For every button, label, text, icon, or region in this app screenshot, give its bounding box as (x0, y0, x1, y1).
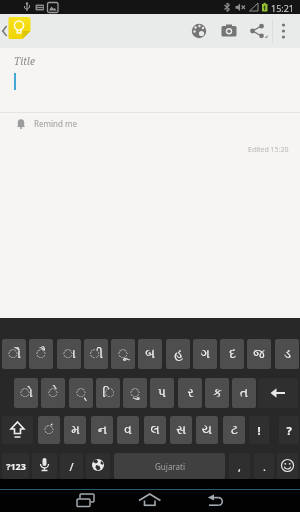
staticText: હ (174, 348, 183, 360)
staticText: ટ (231, 424, 238, 436)
button[interactable]: ટ (223, 416, 245, 444)
button[interactable]: . (254, 453, 274, 479)
button[interactable]: ૌ (2, 339, 26, 369)
button[interactable]: ? (279, 416, 299, 444)
button[interactable]: હ (166, 339, 190, 369)
button[interactable]: ્ (69, 378, 93, 408)
button[interactable]: મ (64, 416, 86, 444)
button[interactable]: િ (96, 378, 120, 408)
button[interactable] (243, 17, 271, 45)
button[interactable] (277, 453, 298, 479)
button[interactable]: જ (247, 339, 271, 369)
staticText: / (69, 459, 74, 474)
button[interactable] (258, 378, 298, 408)
staticText: વ (124, 424, 132, 436)
staticText: Remind me (34, 118, 77, 129)
button[interactable] (185, 17, 213, 45)
button[interactable]: ડ (275, 339, 299, 369)
button[interactable]: Title (8, 52, 292, 70)
button[interactable]: ૈ (29, 339, 53, 369)
staticText: દ (229, 348, 236, 360)
staticText: ૈ (36, 348, 46, 360)
staticText: ા (63, 348, 76, 360)
staticText: બ (145, 348, 155, 360)
button[interactable]: ?123 (2, 453, 29, 479)
staticText: લ (150, 424, 160, 436)
button[interactable] (86, 453, 110, 479)
button[interactable] (215, 17, 243, 45)
button[interactable] (270, 17, 298, 45)
button[interactable]: ર (178, 378, 202, 408)
button[interactable] (204, 490, 232, 512)
staticText: ?123 (6, 460, 26, 472)
staticText: ડ (284, 348, 291, 360)
staticText: જ (253, 348, 265, 360)
button[interactable]: બ (138, 339, 162, 369)
staticText: પ (158, 387, 166, 399)
button[interactable]: ગ (193, 339, 217, 369)
button[interactable]: Remind me (0, 113, 300, 136)
staticText: ે (48, 387, 58, 399)
button[interactable] (32, 453, 57, 479)
staticText: સ (176, 424, 186, 436)
button[interactable]: ક (205, 378, 229, 408)
button[interactable]: ો (14, 378, 38, 408)
button[interactable]: / (60, 453, 83, 479)
button[interactable]: ન (91, 416, 113, 444)
button[interactable] (0, 14, 34, 48)
staticText: ! (257, 423, 261, 438)
staticText: મ (71, 424, 80, 436)
button[interactable]: ા (57, 339, 81, 369)
button[interactable]: ! (249, 416, 269, 444)
button[interactable]: પ (150, 378, 174, 408)
staticText: ? (286, 423, 292, 438)
button[interactable]: સ (170, 416, 192, 444)
button[interactable]: ુ (123, 378, 147, 408)
staticText: , (238, 459, 241, 474)
button[interactable] (136, 490, 164, 512)
staticText: ન (98, 424, 107, 436)
staticText: િ (102, 387, 115, 399)
staticText: ય (202, 424, 212, 436)
staticText: ૂ (118, 348, 128, 360)
staticText: ર (187, 387, 194, 399)
button[interactable]: , (229, 453, 250, 479)
button[interactable]: દ (220, 339, 244, 369)
button[interactable]: ય (196, 416, 218, 444)
staticText: ુ (130, 387, 140, 399)
button[interactable]: ી (84, 339, 108, 369)
button[interactable]: ં (38, 416, 60, 444)
button[interactable]: વ (117, 416, 139, 444)
staticText: ગ (201, 348, 210, 360)
staticText: ી (90, 348, 103, 360)
button[interactable]: ૂ (111, 339, 135, 369)
staticText: 15:21 (271, 2, 295, 14)
staticText: ક (213, 387, 222, 399)
staticText: ૌ (8, 348, 21, 360)
staticText: Edited 15:20 (248, 145, 289, 155)
staticText: Gujarati (155, 461, 185, 472)
button[interactable] (74, 490, 102, 512)
button[interactable]: Gujarati (114, 453, 225, 479)
staticText: . (263, 459, 266, 474)
staticText: ં (44, 424, 54, 436)
staticText: Title (14, 54, 35, 68)
button[interactable]: ત (232, 378, 256, 408)
button[interactable] (2, 416, 33, 444)
button[interactable]: લ (144, 416, 166, 444)
staticText: ત (240, 387, 248, 399)
staticText: ્ (76, 387, 86, 399)
staticText: ો (20, 387, 33, 399)
button[interactable]: ે (41, 378, 65, 408)
